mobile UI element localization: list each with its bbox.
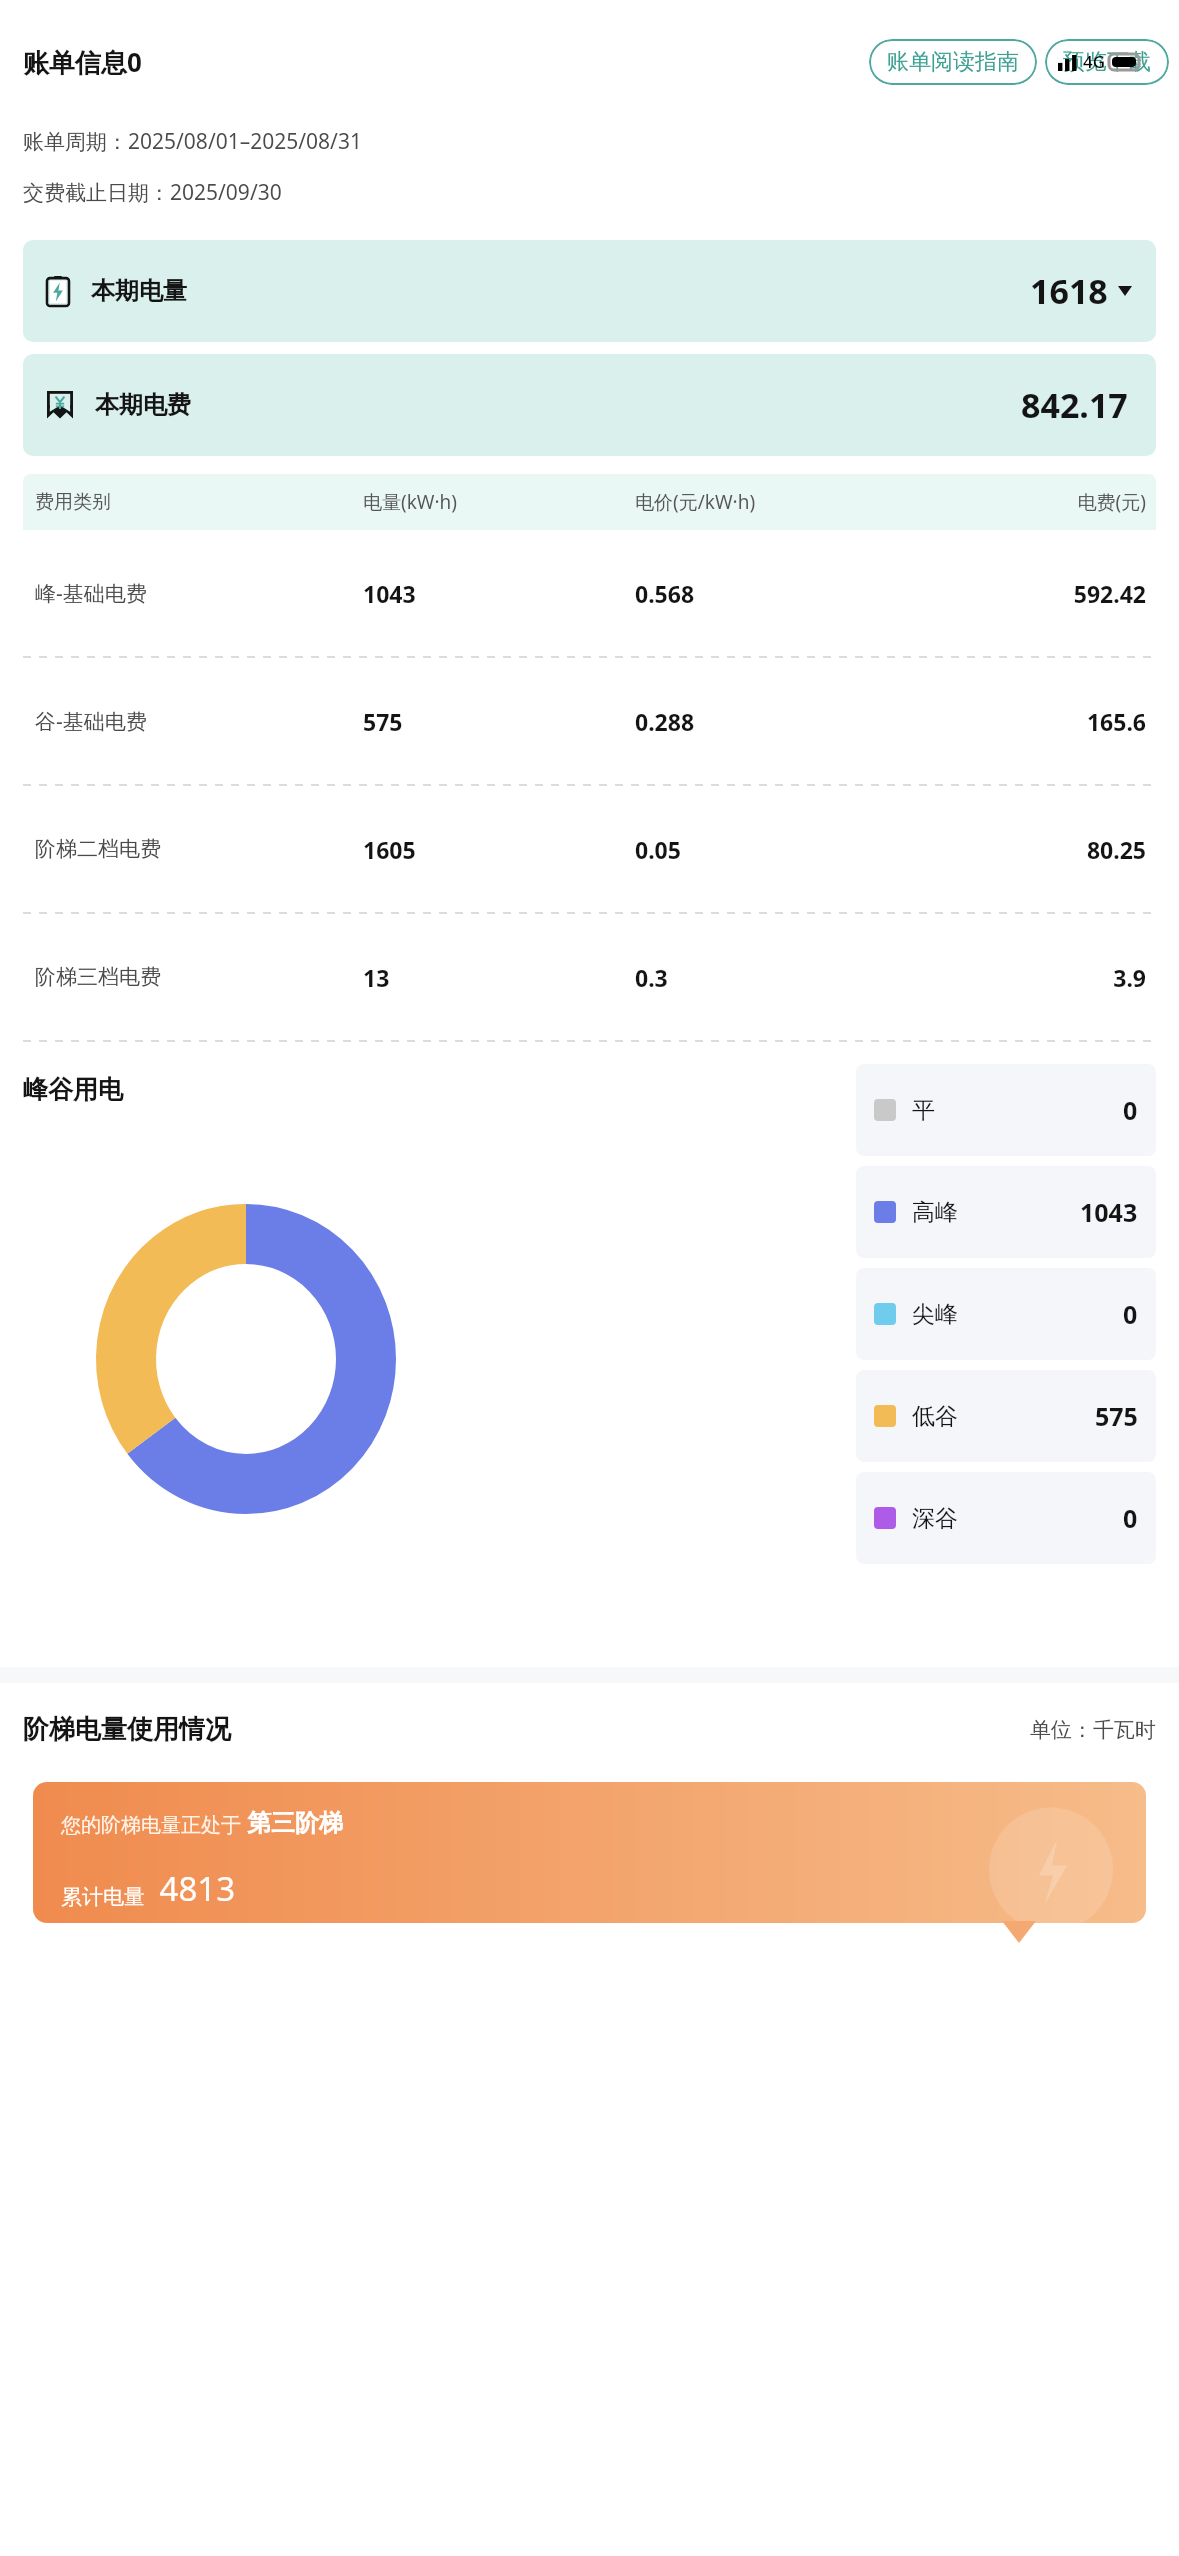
staticText: 阶梯二档电费 [35, 836, 363, 862]
button[interactable]: 峰-基础电费 [23, 530, 1156, 656]
staticText: 谷-基础电费 [35, 707, 363, 736]
button[interactable]: 电量 [23, 240, 1156, 342]
other: 电量 [47, 276, 69, 306]
staticText: 深谷 [912, 1504, 958, 1533]
staticText: 阶梯电量使用情况 [23, 1713, 231, 1746]
other: 电费 [47, 391, 73, 419]
staticText: 592.42 [952, 578, 1146, 609]
staticText: 电量(kW·h) [363, 489, 635, 515]
staticText: 165.6 [952, 706, 1146, 737]
staticText: 本期电费 [95, 390, 191, 420]
staticText: 交费截止日期：2025/09/30 [23, 178, 282, 207]
staticText: 阶梯三档电费 [35, 964, 363, 990]
staticText: 费用类别 [35, 490, 363, 514]
staticText: 账单周期：2025/08/01–2025/08/31 [23, 127, 362, 156]
staticText: 电价(元/kW·h) [635, 489, 952, 515]
button[interactable]: 谷-基础电费 [23, 658, 1156, 784]
button[interactable]: 高峰 [856, 1166, 1156, 1258]
staticText: 高峰 [912, 1198, 958, 1227]
staticText: 3.9 [952, 962, 1146, 993]
staticText: 单位：千瓦时 [1030, 1717, 1156, 1743]
staticText: 575 [1095, 1399, 1138, 1433]
button[interactable]: 深谷 [856, 1472, 1156, 1564]
staticText: 0.568 [635, 578, 952, 609]
staticText: 0.05 [635, 834, 952, 865]
staticText: 1043 [1080, 1195, 1138, 1229]
staticText: 峰谷用电 [23, 1074, 123, 1105]
button[interactable]: 账单阅读指南 [869, 39, 1037, 85]
button[interactable]: 阶梯三档电费 [23, 914, 1156, 1040]
staticText: 0 [1123, 1297, 1138, 1331]
staticText: 0.3 [635, 962, 952, 993]
staticText: 1605 [363, 834, 635, 865]
staticText: 电费(元) [952, 489, 1146, 515]
staticText: 0.288 [635, 706, 952, 737]
staticText: 0 [1123, 1501, 1138, 1535]
staticText: 本期电量 [91, 276, 187, 306]
staticText: 账单阅读指南 [887, 48, 1019, 76]
staticText: 1618 [1030, 268, 1108, 314]
button[interactable]: 您的阶梯电量正处于 [33, 1782, 1146, 1923]
button[interactable]: 电费 [23, 354, 1156, 456]
staticText: 13 [363, 962, 635, 993]
staticText: 842.17 [1021, 382, 1128, 428]
staticText: 您的阶梯电量正处于 [61, 1811, 247, 1838]
staticText: 4G [1083, 50, 1106, 73]
button[interactable]: 尖峰 [856, 1268, 1156, 1360]
staticText: 账单信息0 [23, 44, 142, 80]
button[interactable]: 预览下载 [1045, 39, 1169, 85]
staticText: 4813 [151, 1866, 236, 1911]
staticText: 80.25 [952, 834, 1146, 865]
button[interactable]: 低谷 [856, 1370, 1156, 1462]
button[interactable]: 平 [856, 1064, 1156, 1156]
staticText: 575 [363, 706, 635, 737]
staticText: 第三阶梯 [247, 1808, 343, 1838]
staticText: 尖峰 [912, 1300, 958, 1329]
staticText: 平 [912, 1096, 935, 1125]
staticText: 峰-基础电费 [35, 579, 363, 608]
staticText: 1043 [363, 578, 635, 609]
staticText: 累计电量 [61, 1882, 151, 1911]
staticText: 预览下载 [1063, 48, 1151, 76]
staticText: 0 [1123, 1093, 1138, 1127]
button[interactable]: 阶梯二档电费 [23, 786, 1156, 912]
staticText: 低谷 [912, 1402, 958, 1431]
